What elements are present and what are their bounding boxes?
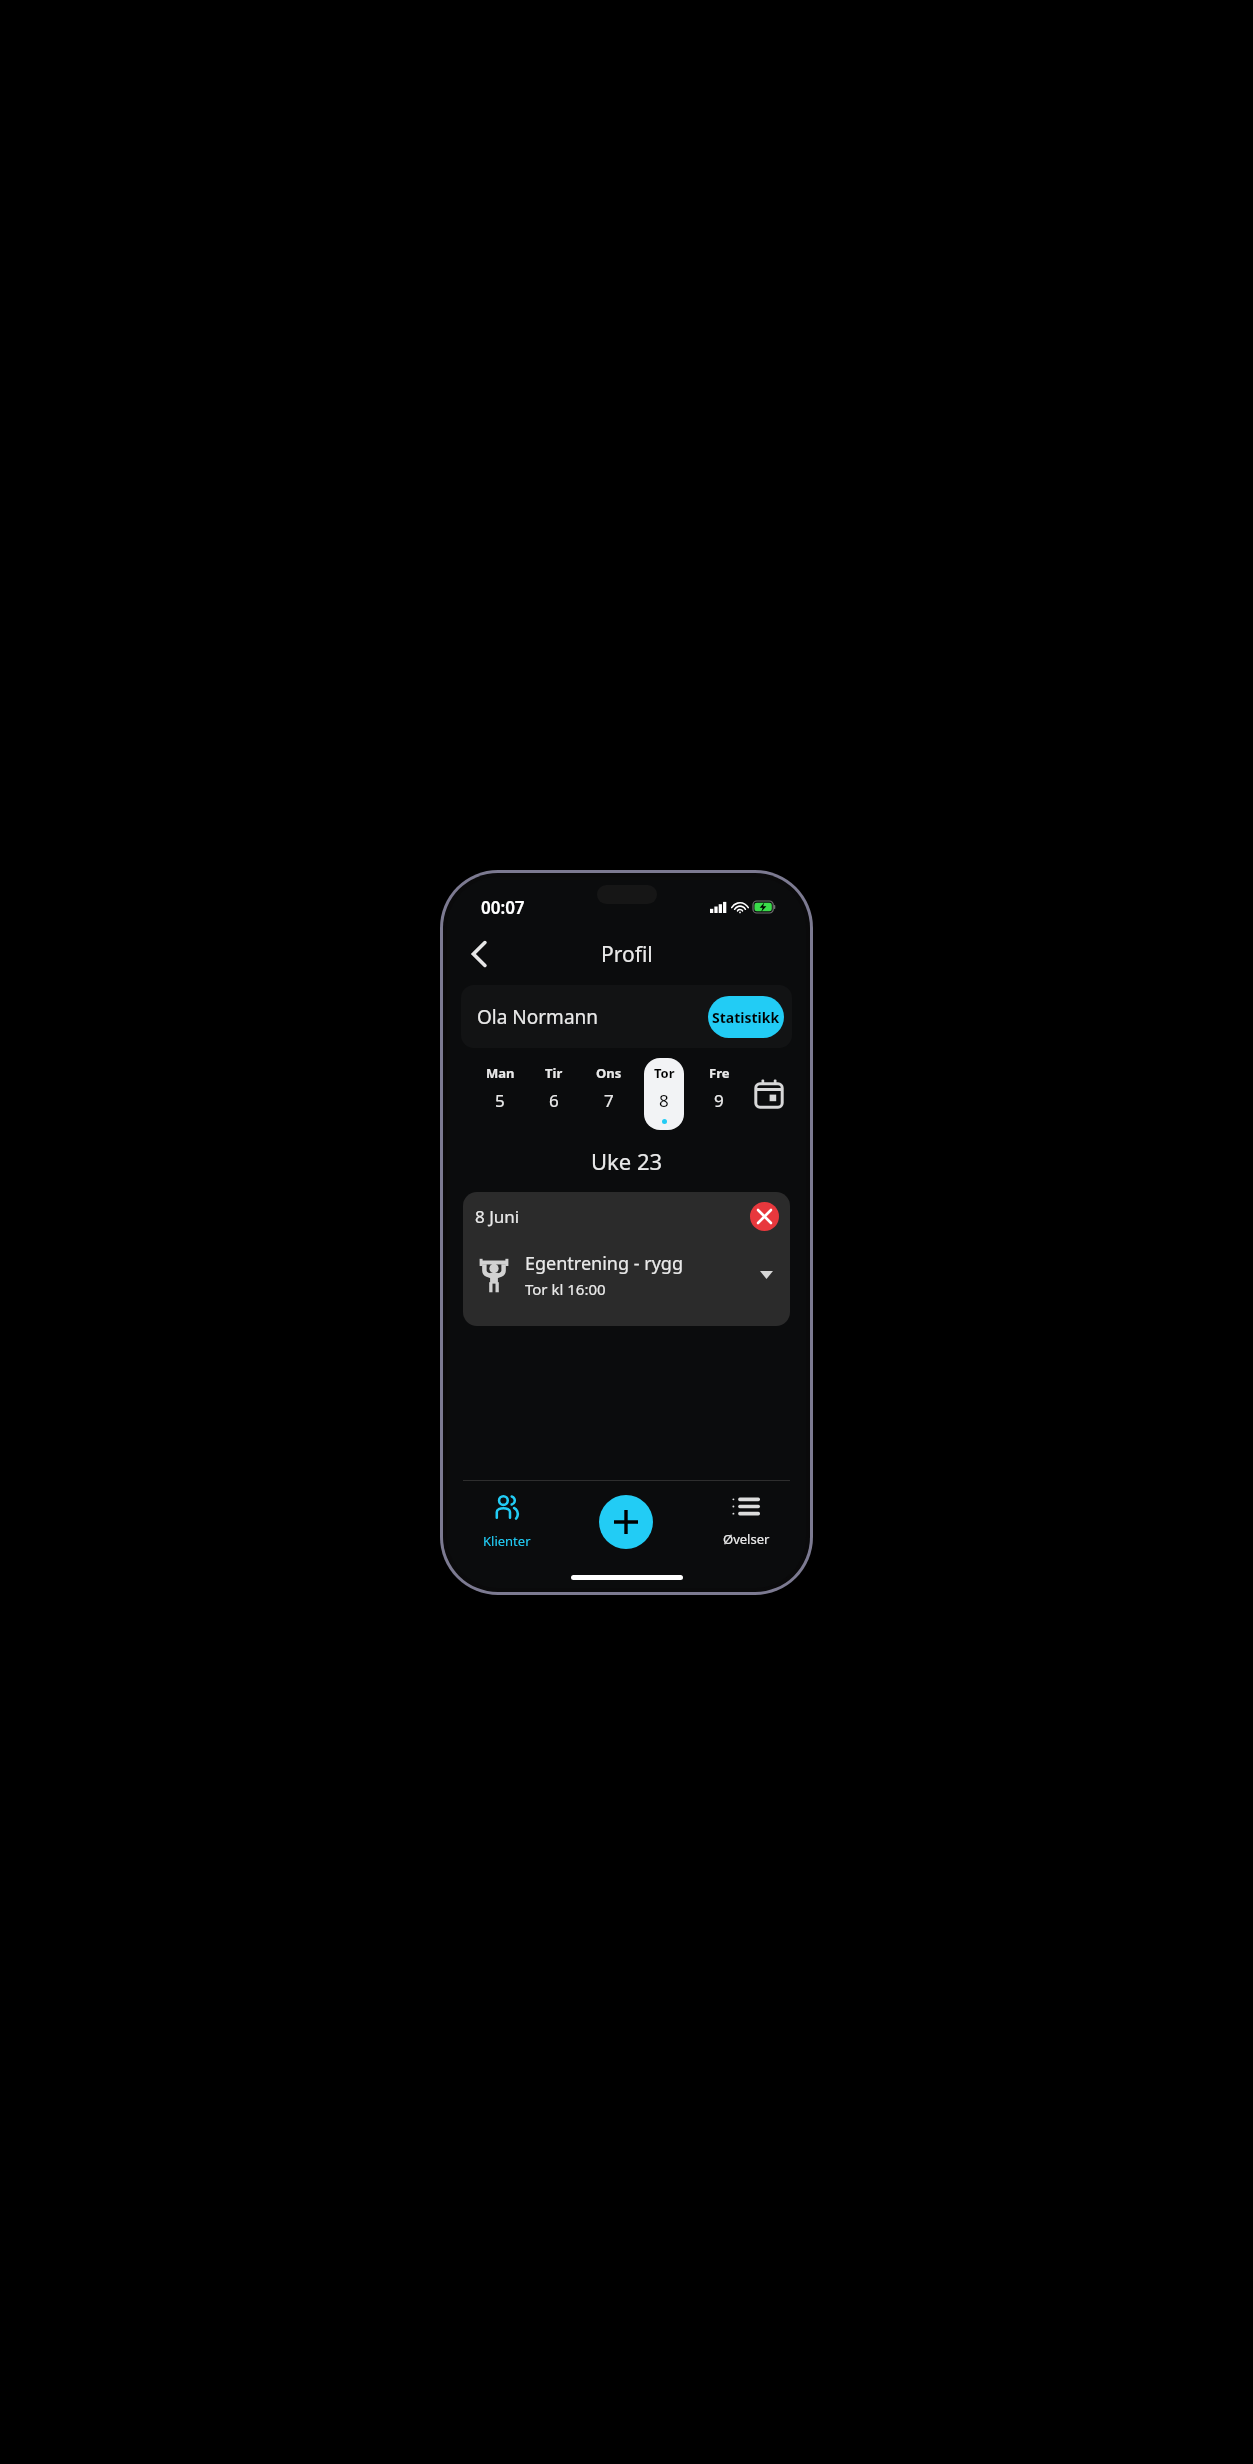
button[interactable]: Fre	[699, 1058, 739, 1130]
staticText: Statistikk	[712, 1008, 780, 1027]
button[interactable]: Add	[599, 1495, 653, 1549]
staticText: 8 Juni	[475, 1205, 520, 1228]
button[interactable]: Back	[457, 932, 501, 976]
button[interactable]: Egentrening - rygg	[463, 1240, 790, 1310]
button[interactable]: Delete	[750, 1202, 779, 1231]
staticText: Klienter	[483, 1532, 531, 1550]
button[interactable]: Statistikk	[708, 996, 784, 1038]
button[interactable]: Tir	[534, 1058, 574, 1130]
staticText: 7	[604, 1089, 614, 1112]
staticText: Fre	[709, 1064, 730, 1082]
staticText: Tor	[654, 1064, 675, 1082]
staticText: Uke 23	[447, 1146, 806, 1176]
staticText: 6	[549, 1089, 559, 1112]
staticText: Tir	[545, 1064, 563, 1082]
button[interactable]: Klienter	[447, 1480, 566, 1564]
button[interactable]: Open calendar	[746, 1054, 792, 1134]
staticText: 5	[495, 1089, 505, 1112]
staticText: Man	[486, 1064, 515, 1082]
staticText: Øvelser	[723, 1530, 770, 1548]
staticText: Tor kl 16:00	[525, 1279, 606, 1299]
staticText: 8	[659, 1089, 669, 1112]
staticText: Ola Normann	[477, 1004, 599, 1030]
button[interactable]: Man	[480, 1058, 520, 1130]
staticText: Egentrening - rygg	[525, 1251, 683, 1276]
button[interactable]: Ons	[589, 1058, 629, 1130]
button[interactable]: Tor	[644, 1058, 684, 1130]
staticText: Ons	[596, 1064, 622, 1082]
staticText: 9	[714, 1089, 724, 1112]
button[interactable]: Ola Normann	[461, 985, 792, 1048]
staticText: 00:07	[481, 896, 525, 919]
staticText: Profil	[601, 940, 653, 969]
button[interactable]: Øvelser	[686, 1480, 806, 1564]
